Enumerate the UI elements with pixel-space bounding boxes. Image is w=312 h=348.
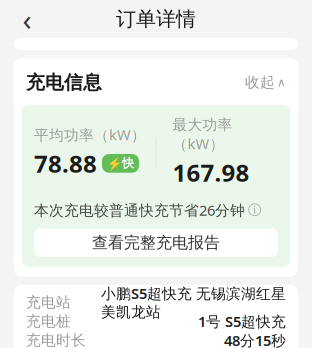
staticText: 1号 S5超快充	[198, 311, 286, 331]
staticText: 订单详情	[116, 7, 196, 31]
staticText: 充电时长	[26, 331, 86, 348]
staticText: 查看完整充电报告	[92, 233, 220, 253]
staticText: ‹	[22, 0, 31, 38]
staticText: 充电信息	[26, 71, 102, 94]
staticText: 最大功率（kW）	[172, 116, 232, 153]
button[interactable]: 查看完整充电报告	[34, 229, 278, 257]
staticText: 平均功率（kW）	[34, 125, 146, 144]
staticText: ∧	[277, 76, 286, 89]
staticText: 48分15秒	[224, 330, 286, 348]
button[interactable]: Back	[10, 2, 44, 36]
staticText: 本次充电较普通快充节省26分钟	[34, 200, 245, 220]
staticText: ⚡快	[107, 156, 134, 171]
staticText: 充电桩	[26, 312, 71, 330]
staticText: 充电站	[26, 293, 71, 311]
staticText: 收起	[245, 73, 275, 91]
staticText: 小鹏S5超快充 无锡滨湖红星美凯龙站	[101, 283, 286, 321]
button[interactable]: 收起	[245, 73, 286, 91]
staticText: 78.88	[34, 147, 97, 179]
staticText: ⓘ	[248, 202, 261, 218]
staticText: 167.98	[172, 156, 249, 188]
